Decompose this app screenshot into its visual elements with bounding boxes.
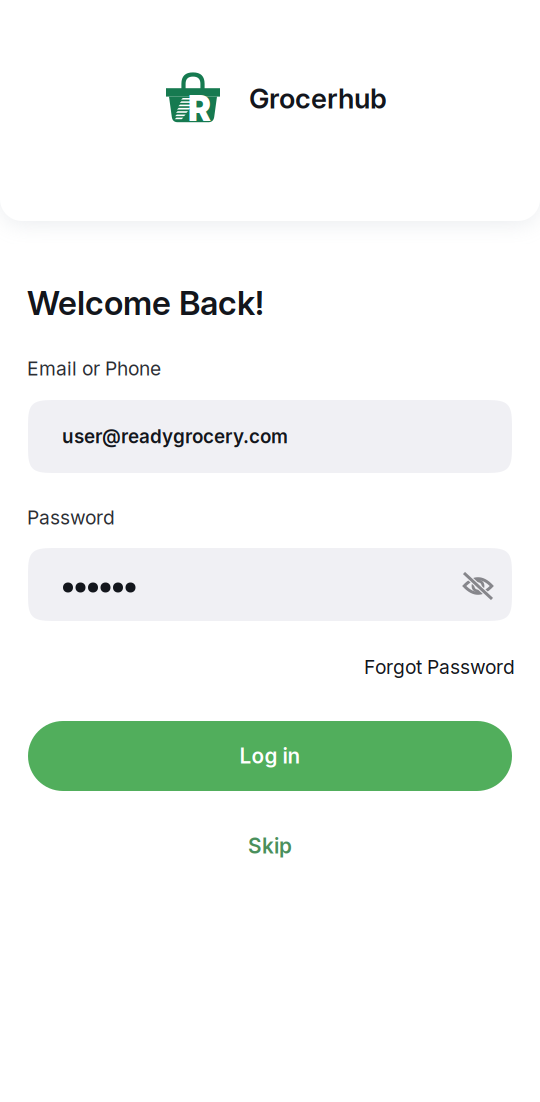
staticText: Welcome Back! bbox=[27, 283, 264, 323]
staticText: user@readygrocery.com bbox=[62, 425, 288, 448]
button[interactable]: user@readygrocery.com bbox=[28, 400, 512, 473]
staticText: Password bbox=[27, 506, 115, 529]
staticText: Log in bbox=[239, 743, 300, 769]
staticText: Forgot Password bbox=[364, 655, 515, 679]
staticText: Grocerhub bbox=[249, 82, 387, 115]
staticText: Skip bbox=[248, 833, 292, 859]
button[interactable]: Hide password bbox=[451, 559, 505, 613]
button[interactable] bbox=[28, 548, 512, 621]
button[interactable]: Log in bbox=[28, 721, 512, 791]
button[interactable]: Forgot Password bbox=[315, 650, 515, 684]
button[interactable]: Skip bbox=[205, 824, 335, 868]
staticText: Email or Phone bbox=[27, 357, 161, 380]
staticText: R bbox=[188, 87, 211, 129]
